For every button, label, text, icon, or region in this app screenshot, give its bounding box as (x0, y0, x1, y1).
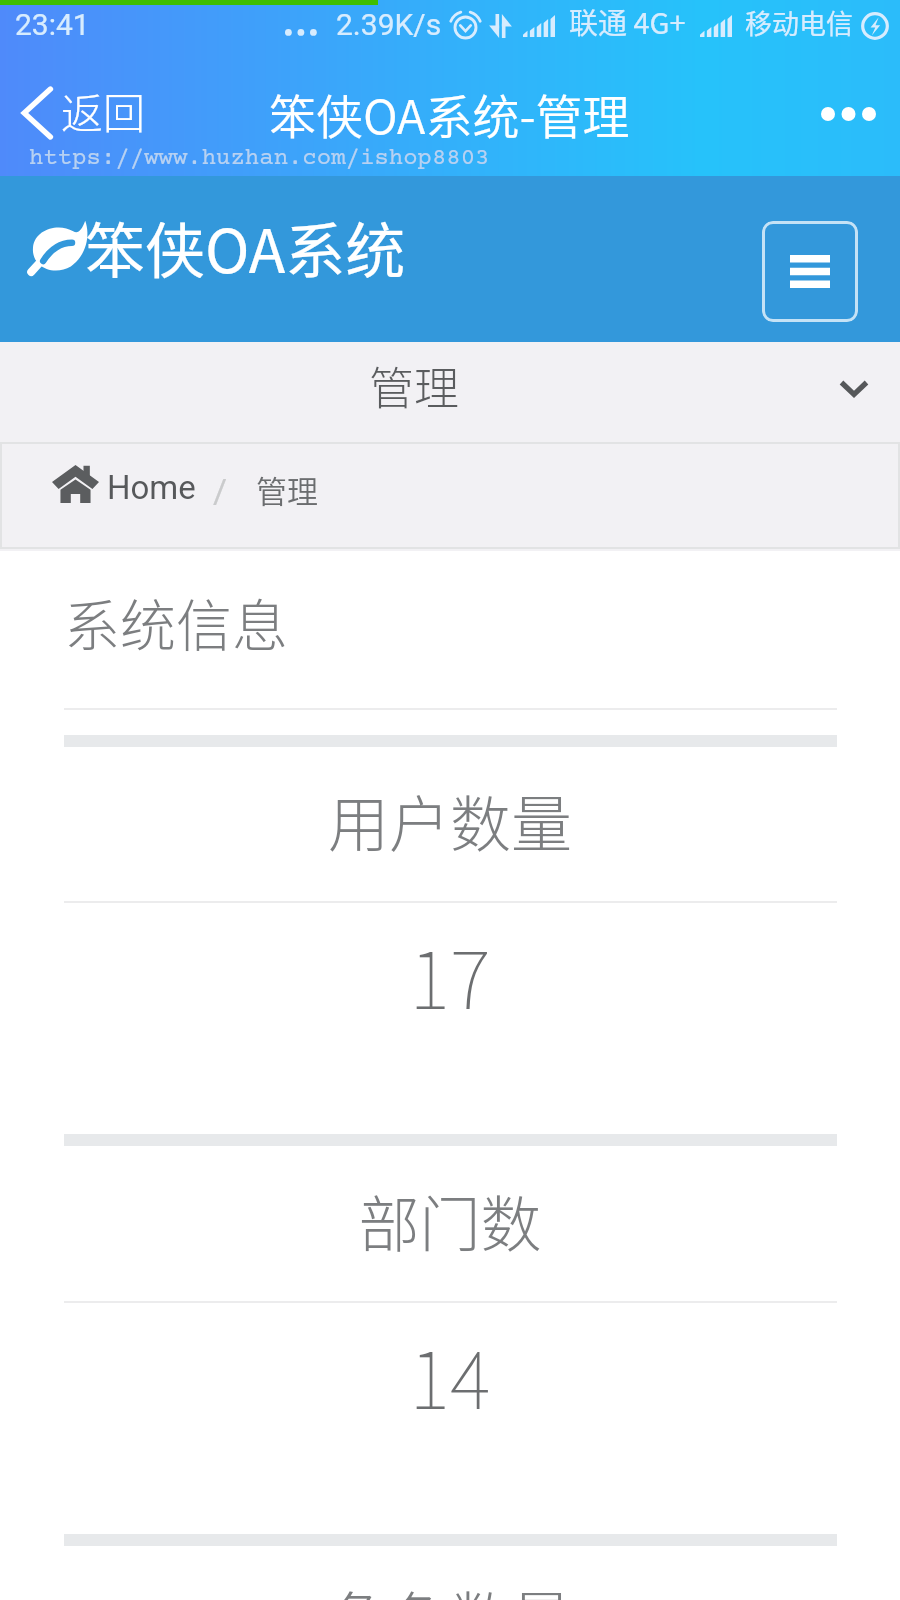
button[interactable]: 管理 (0, 342, 900, 441)
staticText: 14 (0, 1319, 900, 1432)
staticText: Home (107, 468, 196, 507)
staticText: 部门数 (0, 1176, 900, 1264)
staticText: 角色数量 (0, 1572, 900, 1600)
staticText: / (213, 471, 228, 511)
staticText: 联通 4G+ (569, 0, 686, 42)
button[interactable]: More options (808, 85, 890, 143)
button[interactable]: Home (52, 464, 197, 503)
staticText: 用户数量 (0, 776, 900, 864)
button[interactable]: Menu (762, 221, 858, 322)
button[interactable]: 笨侠OA系统 (30, 201, 413, 288)
staticText: https://www.huzhan.com/ishop8803 (29, 145, 490, 172)
staticText: 笨侠OA系统-管理 (269, 79, 630, 147)
button[interactable]: 返回 (0, 82, 146, 143)
staticText: 笨侠OA系统 (85, 203, 406, 290)
staticText: 系统信息 (64, 581, 288, 662)
staticText: 管理 (369, 353, 460, 418)
staticText: 17 (0, 919, 900, 1032)
button[interactable]: 管理 (256, 467, 318, 512)
staticText: 2.39K/s (336, 7, 442, 42)
staticText: 23:41 (15, 7, 90, 42)
staticText: 移动电信 (745, 3, 853, 42)
staticText: 返回 (61, 80, 146, 141)
